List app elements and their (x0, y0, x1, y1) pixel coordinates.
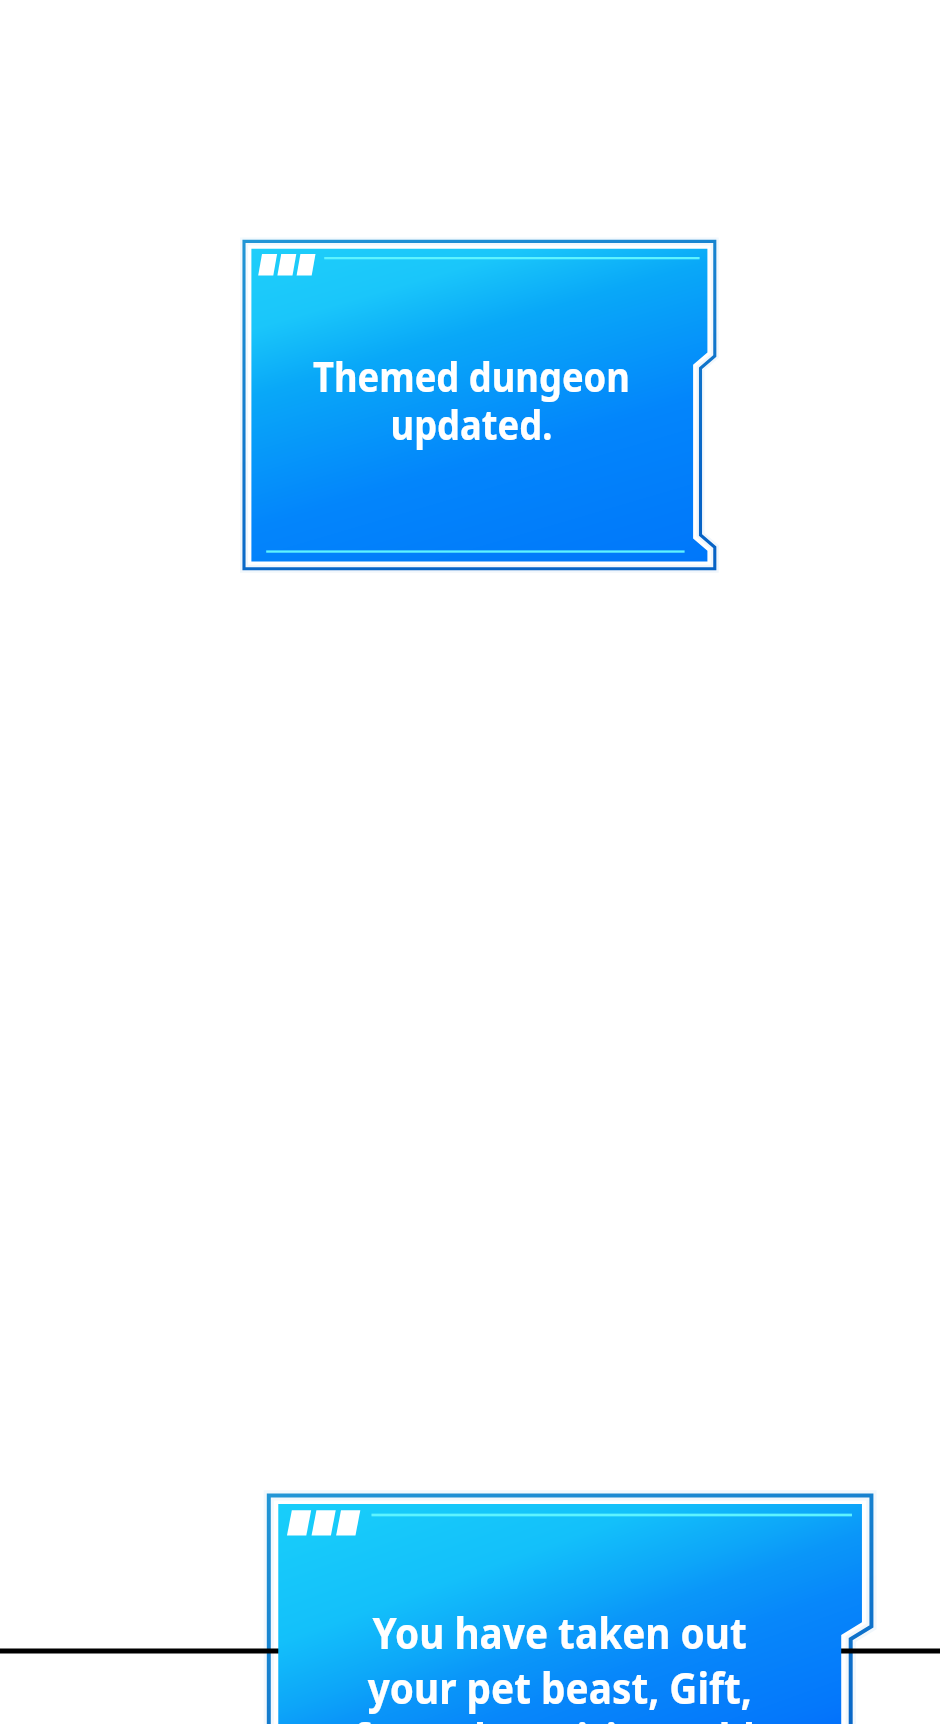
button[interactable]: Comic page, tap to toggle reader control… (0, 0, 940, 1724)
